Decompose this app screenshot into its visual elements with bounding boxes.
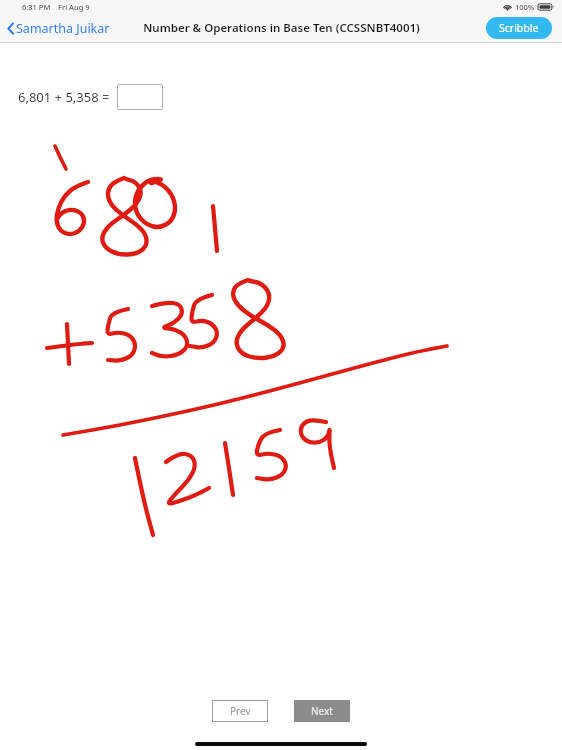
button[interactable]: Answer field <box>117 84 163 110</box>
staticText: 6,801 + 5,358 = <box>18 88 110 106</box>
button[interactable]: Next <box>294 700 350 722</box>
button[interactable]: Prev <box>212 700 268 722</box>
staticText: 100% <box>515 2 535 12</box>
staticText: Samartha Juikar <box>16 20 110 37</box>
staticText: Number & Operations in Base Ten (CCSSNBT… <box>143 20 420 36</box>
staticText: Fri Aug 9 <box>58 2 90 12</box>
button[interactable]: Samartha Juikar <box>0 16 120 41</box>
button[interactable]: Scribble <box>486 17 552 39</box>
staticText: 6:31 PM <box>22 2 51 12</box>
staticText: Scribble <box>499 21 539 35</box>
staticText: Prev <box>230 704 251 718</box>
staticText: Next <box>311 704 333 718</box>
